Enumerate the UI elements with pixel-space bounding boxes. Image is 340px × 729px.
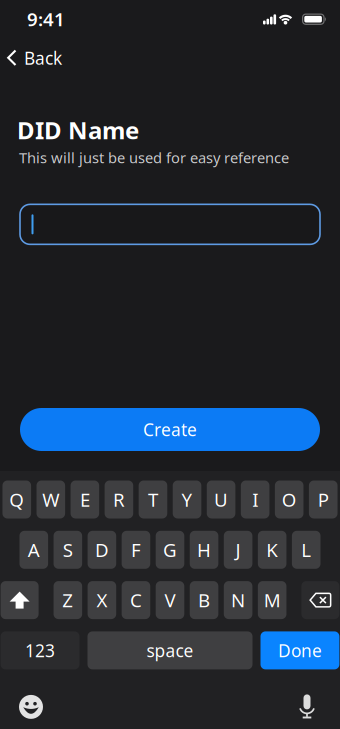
button[interactable]: Done	[260, 631, 339, 669]
button[interactable]: Z	[54, 581, 82, 619]
staticText: D	[95, 537, 109, 562]
staticText: Y	[181, 487, 192, 512]
button[interactable]: Delete	[301, 581, 339, 619]
staticText: This will just be used for easy referenc…	[19, 148, 289, 167]
button[interactable]: Emoji	[19, 695, 43, 719]
button[interactable]: K	[258, 531, 286, 569]
button[interactable]: B	[190, 581, 218, 619]
button[interactable]: Q	[2, 480, 31, 518]
button[interactable]: Create	[20, 408, 320, 451]
staticText: M	[264, 588, 281, 612]
staticText: J	[236, 537, 241, 562]
staticText: L	[301, 537, 311, 562]
staticText: V	[164, 588, 175, 612]
button[interactable]: G	[156, 531, 184, 569]
button[interactable]: D	[88, 531, 116, 569]
staticText: Done	[278, 639, 322, 662]
staticText: N	[231, 588, 245, 612]
button[interactable]: U	[207, 480, 235, 518]
staticText: R	[113, 487, 125, 512]
button[interactable]: W	[36, 480, 65, 518]
button[interactable]: E	[71, 480, 99, 518]
staticText: F	[131, 537, 141, 562]
button[interactable]: S	[54, 531, 82, 569]
staticText: T	[148, 487, 158, 512]
staticText: O	[282, 487, 297, 512]
button[interactable]: R	[105, 480, 133, 518]
staticText: C	[130, 588, 142, 612]
staticText: Back	[24, 46, 62, 69]
button[interactable]: C	[122, 581, 150, 619]
staticText: Create	[143, 418, 197, 441]
button[interactable]: O	[275, 480, 303, 518]
button[interactable]: J	[224, 531, 252, 569]
staticText: space	[146, 639, 193, 662]
staticText: B	[198, 588, 210, 612]
button[interactable]: H	[190, 531, 218, 569]
button[interactable]: P	[309, 480, 337, 518]
button[interactable]: V	[156, 581, 184, 619]
button[interactable]: F	[122, 531, 150, 569]
button[interactable]: Dictate	[298, 694, 316, 720]
staticText: U	[214, 487, 228, 512]
staticText: 123	[25, 639, 55, 662]
button[interactable]: Y	[173, 480, 201, 518]
staticText: I	[252, 487, 258, 512]
button[interactable]: 123	[1, 631, 79, 669]
staticText: S	[63, 537, 73, 562]
button[interactable]: I	[241, 480, 269, 518]
staticText: P	[318, 487, 329, 512]
staticText: G	[163, 537, 177, 562]
button[interactable]: Back	[0, 46, 62, 69]
button[interactable]: space	[87, 631, 252, 669]
staticText: Q	[9, 487, 24, 512]
staticText: E	[80, 487, 90, 512]
staticText: Z	[62, 588, 73, 612]
button[interactable]: X	[88, 581, 116, 619]
button[interactable]: Shift	[1, 581, 39, 619]
button[interactable]: T	[139, 480, 167, 518]
staticText: DID Name	[17, 114, 139, 146]
button[interactable]: N	[224, 581, 252, 619]
staticText: 9:41	[27, 7, 65, 31]
staticText: H	[197, 537, 211, 562]
button[interactable]: M	[258, 581, 286, 619]
staticText: K	[266, 537, 278, 562]
button[interactable]: A	[19, 531, 48, 569]
staticText: W	[42, 487, 59, 512]
staticText: X	[96, 588, 107, 612]
staticText: A	[28, 537, 40, 562]
button[interactable]: L	[292, 531, 320, 569]
